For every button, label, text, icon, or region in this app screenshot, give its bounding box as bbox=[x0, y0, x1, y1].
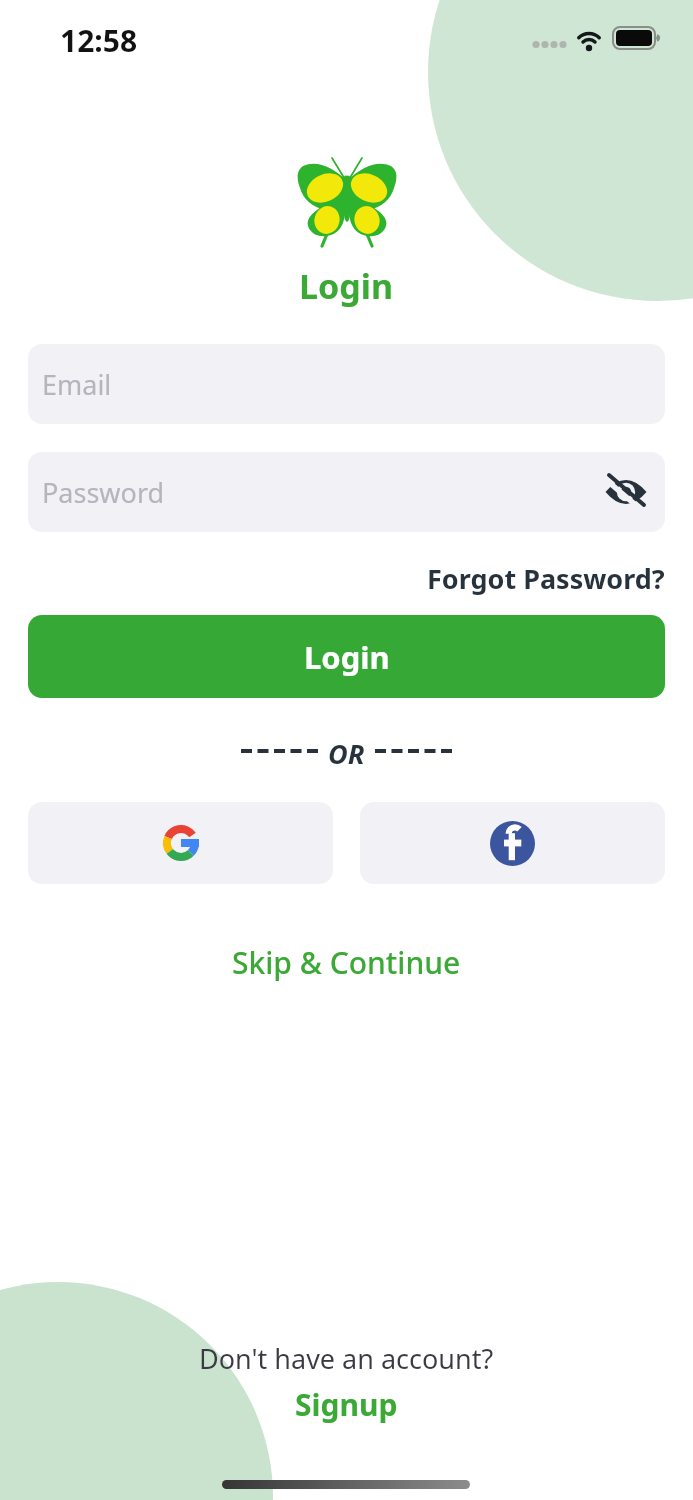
staticText: Email bbox=[42, 366, 112, 403]
staticText: 12:58 bbox=[60, 20, 138, 61]
staticText: Login bbox=[304, 636, 390, 678]
button[interactable]: Forgot Password? bbox=[427, 560, 665, 597]
staticText: Password bbox=[42, 474, 165, 511]
button[interactable] bbox=[28, 802, 333, 884]
button[interactable]: Skip & Continue bbox=[232, 942, 461, 983]
button[interactable]: Login bbox=[28, 615, 665, 698]
staticText: Don't have an account? bbox=[199, 1340, 494, 1377]
staticText: OR bbox=[328, 735, 365, 767]
button[interactable]: Signup bbox=[295, 1384, 398, 1425]
button[interactable] bbox=[360, 802, 665, 884]
button[interactable]: Email bbox=[28, 344, 665, 424]
staticText: Login bbox=[299, 263, 394, 309]
button[interactable]: Password bbox=[28, 452, 665, 532]
